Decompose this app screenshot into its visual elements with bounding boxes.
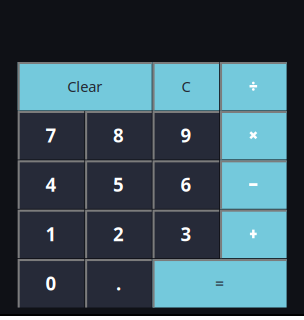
- button[interactable]: 2: [85, 210, 152, 258]
- button[interactable]: Clear entry: [153, 62, 219, 110]
- button[interactable]: 0: [18, 259, 84, 308]
- staticText: 1: [45, 221, 56, 246]
- button[interactable]: Equals: [153, 259, 287, 308]
- staticText: 8: [113, 123, 124, 148]
- button[interactable]: 7: [18, 111, 84, 159]
- button[interactable]: .: [85, 259, 152, 308]
- button[interactable]: 8: [85, 111, 152, 159]
- button[interactable]: Subtract: [220, 160, 287, 209]
- button[interactable]: Add: [220, 210, 287, 258]
- staticText: 6: [180, 172, 191, 197]
- button[interactable]: 1: [18, 210, 84, 258]
- staticText: 3: [180, 221, 191, 246]
- staticText: 7: [45, 123, 56, 148]
- button[interactable]: Clear: [18, 62, 152, 110]
- staticText: Clear: [67, 76, 102, 96]
- button[interactable]: Divide: [220, 62, 287, 110]
- button[interactable]: 9: [153, 111, 219, 159]
- staticText: 9: [180, 123, 191, 148]
- staticText: 0: [45, 271, 56, 296]
- button[interactable]: 3: [153, 210, 219, 258]
- button[interactable]: Multiply: [220, 111, 287, 159]
- button[interactable]: 5: [85, 160, 152, 209]
- staticText: 4: [45, 172, 56, 197]
- staticText: 5: [113, 172, 124, 197]
- staticText: =: [215, 273, 224, 294]
- button[interactable]: 6: [153, 160, 219, 209]
- button[interactable]: 4: [18, 160, 84, 209]
- staticText: 2: [113, 221, 124, 246]
- staticText: C: [181, 76, 190, 96]
- staticText: .: [116, 271, 121, 296]
